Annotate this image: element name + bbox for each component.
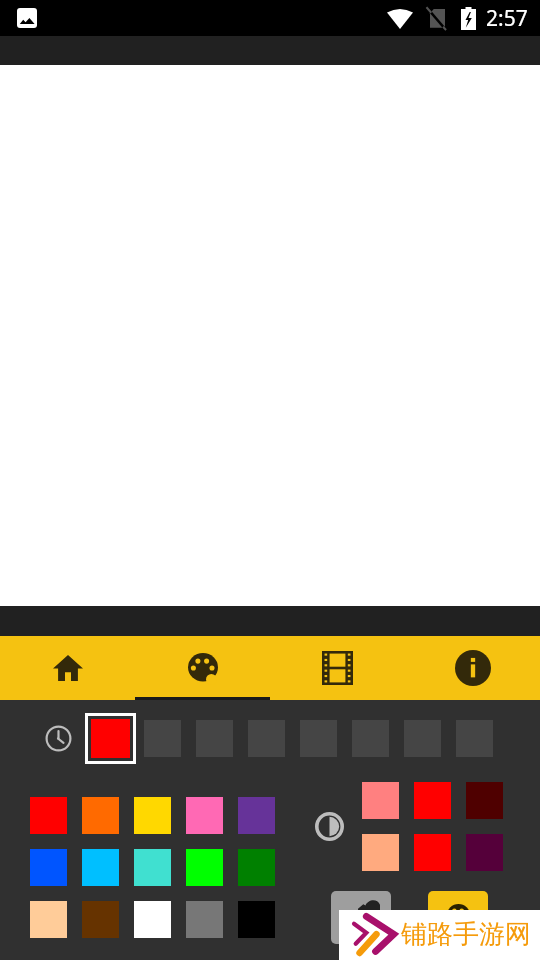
button[interactable]: Info <box>405 636 540 700</box>
staticText: 2:57 <box>486 4 528 33</box>
button[interactable]: Home <box>0 636 135 700</box>
staticText: 铺路手游网 <box>401 918 531 951</box>
button[interactable]: Frames <box>270 636 405 700</box>
button[interactable]: Image <box>331 891 391 944</box>
button[interactable]: Palette <box>135 636 270 700</box>
button[interactable]: Recent colors <box>45 725 72 752</box>
button[interactable]: More palettes <box>428 891 488 944</box>
button[interactable]: Brightness <box>315 812 344 841</box>
